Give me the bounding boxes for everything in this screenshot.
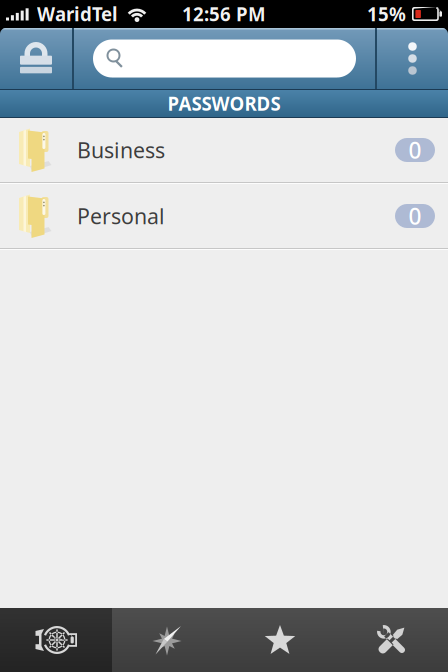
button[interactable]: Favorites (224, 608, 336, 672)
staticText: 0 (408, 201, 421, 231)
staticText: PASSWORDS (167, 91, 280, 116)
button[interactable]: Settings (0, 608, 112, 672)
staticText: 12:56 PM (182, 2, 266, 26)
button[interactable]: More options (377, 28, 448, 89)
button[interactable]: Personal (0, 184, 448, 248)
staticText: WaridTel (37, 2, 118, 26)
staticText: Business (77, 136, 165, 164)
button[interactable]: Business (0, 118, 448, 182)
staticText: 15% (367, 2, 406, 26)
button[interactable]: Browser (112, 608, 224, 672)
staticText: Personal (77, 202, 165, 230)
button[interactable]: Lock (0, 28, 72, 89)
button[interactable]: Tools (336, 608, 448, 672)
staticText: 0 (408, 135, 421, 165)
